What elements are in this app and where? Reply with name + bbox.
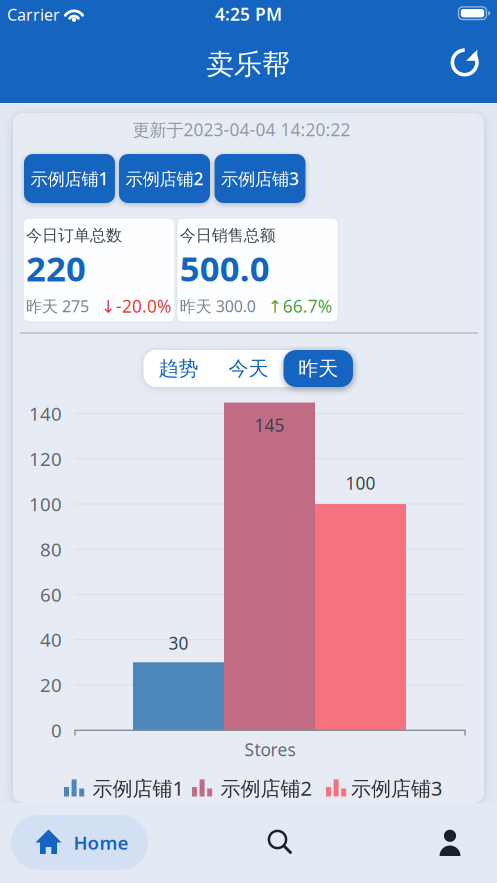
staticText: 更新于2023-04-04 14:20:22 [132, 118, 350, 141]
staticText: 40 [40, 627, 62, 652]
button[interactable]: 趋势 [145, 350, 211, 387]
button[interactable]: Profile [420, 813, 480, 873]
button[interactable]: 昨天 [283, 350, 353, 387]
staticText: 140 [29, 401, 62, 426]
button[interactable]: 示例店铺2 [119, 154, 210, 203]
staticText: 今日销售总额 [180, 226, 276, 245]
button[interactable]: Home [11, 815, 148, 870]
staticText: 今日订单总数 [26, 226, 122, 245]
staticText: 示例店铺3 [351, 775, 442, 801]
staticText: Carrier [7, 4, 60, 25]
staticText: 120 [29, 446, 62, 471]
staticText: 示例店铺3 [221, 167, 299, 190]
staticText: 卖乐帮 [206, 47, 290, 82]
staticText: ↓-20.0% [101, 294, 171, 317]
staticText: 示例店铺2 [220, 775, 311, 801]
staticText: 昨天 300.0 [180, 295, 256, 317]
staticText: 示例店铺1 [30, 167, 108, 190]
button[interactable]: Search [250, 813, 310, 873]
button[interactable]: 示例店铺1 [24, 154, 115, 203]
button[interactable]: Refresh [443, 40, 487, 84]
staticText: ↑66.7% [268, 294, 332, 317]
staticText: 30 [168, 631, 188, 654]
staticText: 100 [29, 492, 62, 516]
staticText: 昨天 [298, 356, 338, 381]
staticText: 145 [254, 413, 284, 436]
staticText: 今天 [228, 356, 268, 381]
staticText: 60 [40, 582, 62, 607]
staticText: 趋势 [158, 356, 198, 381]
staticText: 100 [345, 471, 375, 494]
button[interactable]: 今天 [215, 350, 281, 387]
staticText: 示例店铺2 [125, 167, 203, 190]
staticText: 示例店铺1 [92, 775, 183, 801]
staticText: 昨天 275 [26, 295, 89, 317]
staticText: 80 [40, 537, 62, 562]
staticText: 20 [40, 672, 62, 697]
staticText: Stores [244, 738, 295, 761]
staticText: 220 [26, 245, 86, 291]
staticText: 500.0 [180, 245, 270, 291]
staticText: Home [73, 830, 128, 855]
staticText: 0 [51, 718, 62, 743]
button[interactable]: 示例店铺3 [214, 154, 305, 203]
staticText: 4:25 PM [215, 2, 282, 25]
